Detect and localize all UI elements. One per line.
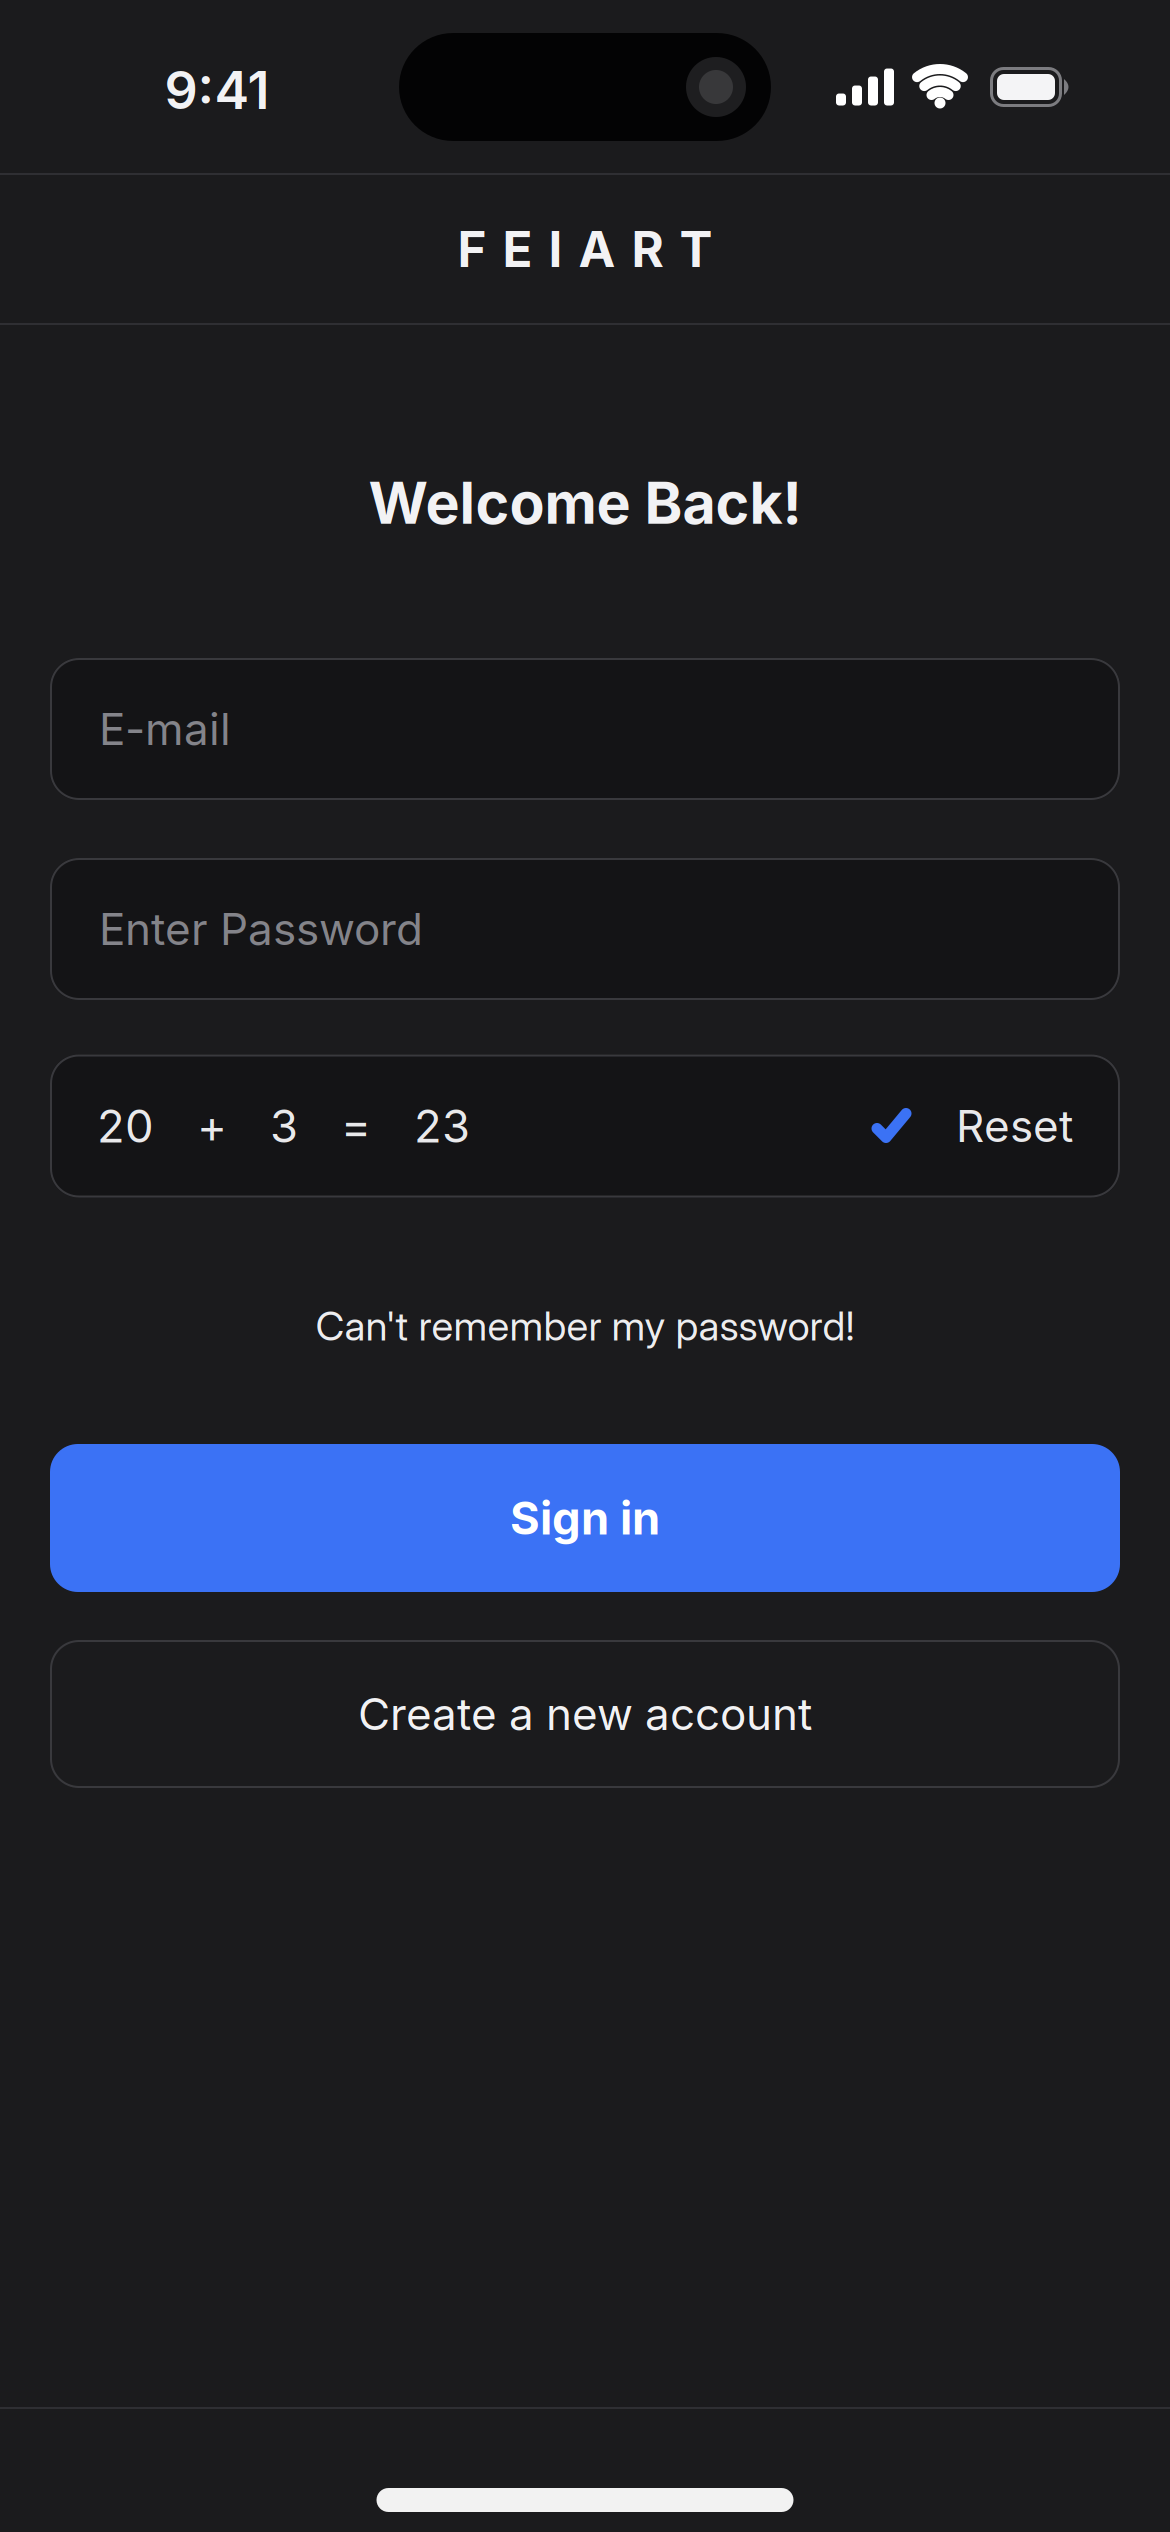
button[interactable]: Create a new account (50, 1640, 1120, 1788)
staticText: Enter Password (99, 903, 423, 955)
button[interactable]: Sign in (50, 1444, 1120, 1592)
staticText: 9:41 (164, 59, 269, 121)
staticText: + (197, 1099, 227, 1153)
staticText: 20 (97, 1099, 154, 1153)
button[interactable]: Enter Password (50, 858, 1120, 1000)
staticText: = (341, 1099, 371, 1153)
staticText: Create a new account (358, 1688, 812, 1740)
staticText: 23 (414, 1099, 470, 1153)
staticText: Reset (956, 1100, 1073, 1152)
staticText: E-mail (99, 703, 231, 755)
button[interactable]: Reset (910, 1100, 1073, 1152)
button[interactable]: E-mail (50, 658, 1120, 800)
staticText: Can't remember my password! (315, 1302, 854, 1350)
staticText: 3 (270, 1099, 298, 1153)
staticText: Welcome Back! (368, 469, 801, 537)
staticText: FEIART (457, 220, 712, 278)
staticText: Sign in (510, 1491, 660, 1545)
button[interactable]: Can't remember my password! (315, 1302, 854, 1350)
